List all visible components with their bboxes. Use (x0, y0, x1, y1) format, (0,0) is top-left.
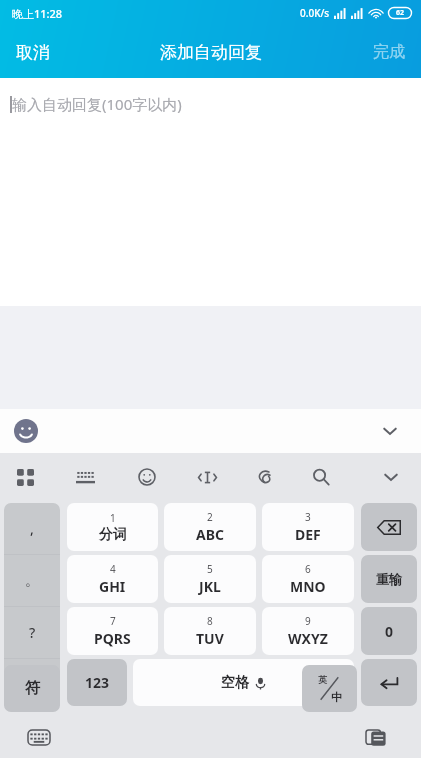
staticText: 123 (85, 673, 110, 692)
button[interactable]: 0 (361, 607, 417, 655)
button[interactable]: Recent apps (359, 720, 393, 754)
staticText: ABC (196, 525, 224, 544)
button[interactable]: 9 (262, 607, 354, 655)
button[interactable]: 。 (4, 555, 60, 606)
button[interactable]: 4 (67, 555, 158, 603)
button[interactable]: ? (4, 607, 60, 658)
button[interactable]: 英 (302, 665, 357, 712)
button[interactable]: 1 (67, 503, 158, 551)
staticText: 3 (305, 510, 311, 524)
button[interactable]: 取消 (0, 26, 66, 78)
button[interactable]: 重输 (361, 555, 417, 603)
button[interactable]: 3 (262, 503, 354, 551)
button[interactable]: Collapse suggestions (373, 414, 407, 448)
staticText: 4 (110, 562, 116, 576)
button[interactable]: Switch keyboard (22, 720, 56, 754)
staticText: 6 (305, 562, 311, 576)
staticText: 晚上11:28 (12, 6, 63, 21)
staticText: 9 (305, 614, 311, 628)
staticText: 1 (110, 511, 116, 525)
staticText: 7 (110, 614, 116, 628)
staticText: 取消 (16, 42, 50, 63)
staticText: MNO (290, 577, 326, 596)
staticText: 中 (331, 690, 342, 704)
button[interactable]: 7 (67, 607, 158, 655)
button[interactable]: Text edit (190, 460, 224, 494)
staticText: 。 (25, 572, 39, 590)
staticText: ? (29, 623, 36, 642)
button[interactable]: Clipboard (248, 460, 282, 494)
button[interactable]: 2 (164, 503, 256, 551)
button[interactable]: Emoji suggestion (12, 417, 40, 445)
button[interactable]: Search (304, 460, 338, 494)
staticText: 英 (318, 674, 327, 685)
staticText: 符 (25, 679, 40, 698)
staticText: JKL (199, 577, 221, 596)
staticText: 空格 (221, 674, 249, 692)
button[interactable]: 5 (164, 555, 256, 603)
staticText: 添加自动回复 (160, 42, 262, 63)
staticText: TUV (196, 629, 224, 648)
button[interactable]: Emoji (130, 460, 164, 494)
staticText: GHI (99, 577, 126, 596)
button[interactable]: ! (4, 659, 60, 710)
button[interactable]: 123 (67, 659, 127, 706)
button[interactable]: Keyboard layouts (8, 460, 42, 494)
staticText: 2 (207, 510, 213, 524)
staticText: 分词 (99, 526, 127, 544)
staticText: 完成 (373, 42, 405, 62)
button[interactable]: 完成 (357, 26, 421, 78)
staticText: ! (30, 675, 34, 694)
button[interactable]: 6 (262, 555, 354, 603)
staticText: 重输 (376, 571, 402, 587)
staticText: 5 (207, 562, 213, 576)
button[interactable]: Hide keyboard (373, 459, 409, 495)
button[interactable]: Enter (361, 659, 417, 706)
staticText: 输入自动回复(100字以内) (12, 94, 182, 114)
button[interactable]: 符 (4, 665, 60, 712)
staticText: , (30, 519, 34, 538)
button[interactable]: , (4, 503, 60, 554)
staticText: 8 (207, 614, 213, 628)
button[interactable]: 空格 (133, 659, 354, 706)
staticText: WXYZ (288, 629, 328, 648)
button[interactable]: Keyboard (68, 460, 102, 494)
button[interactable]: Backspace (361, 503, 417, 551)
staticText: 62 (396, 8, 405, 18)
staticText: 0.0K/s (300, 6, 330, 20)
button[interactable]: 8 (164, 607, 256, 655)
staticText: DEF (295, 525, 321, 544)
staticText: PQRS (94, 629, 131, 648)
staticText: 0 (385, 622, 394, 641)
